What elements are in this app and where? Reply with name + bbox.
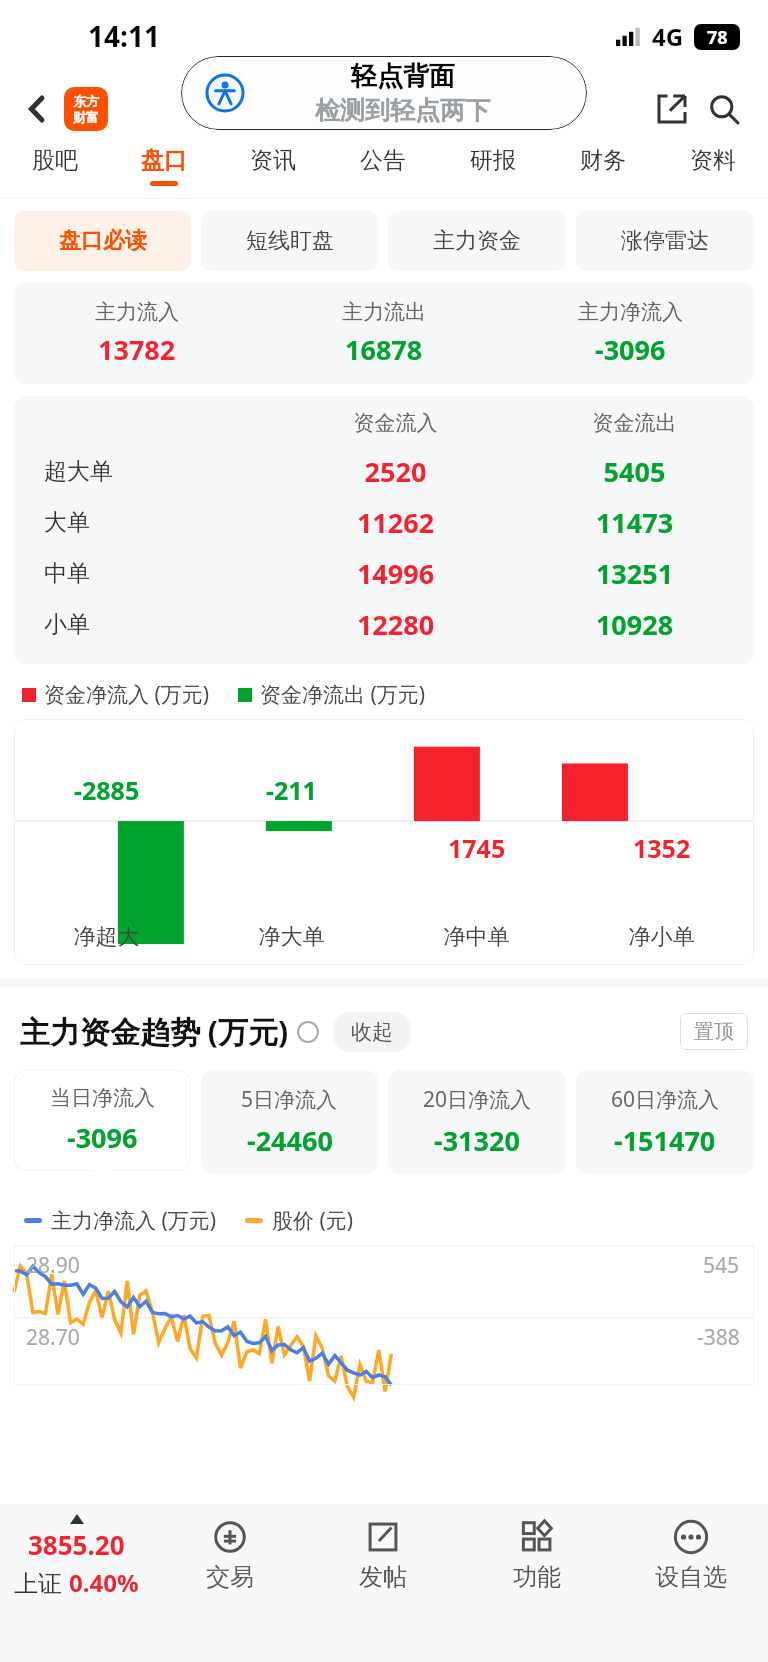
staticText: -388 [697, 1323, 740, 1352]
staticText: 东方 [73, 93, 99, 109]
staticText: 资金流出 [515, 410, 754, 436]
staticText: 545 [703, 1251, 740, 1280]
staticText: -211 [266, 773, 317, 807]
staticText: 资金净流入 (万元) [44, 680, 210, 709]
button[interactable]: 盘口 [109, 146, 218, 198]
staticText: 检测到轻点两下 [315, 95, 490, 126]
button[interactable]: 主力资金 [388, 211, 566, 271]
staticText: 净大单 [199, 923, 384, 951]
staticText: 2520 [276, 453, 515, 490]
button[interactable]: 5日净流入 [201, 1070, 378, 1174]
staticText: 主力流出 [342, 299, 426, 325]
button[interactable]: 置顶 [680, 1013, 748, 1050]
button[interactable]: Help [297, 1021, 319, 1043]
staticText: 资金净流出 (万元) [260, 680, 426, 709]
button[interactable]: Post [306, 1520, 460, 1592]
staticText: 16878 [345, 331, 423, 368]
staticText: 14996 [276, 555, 515, 592]
button[interactable]: 当日净流入 [14, 1070, 191, 1171]
staticText: 当日净流入 [50, 1085, 155, 1111]
staticText: 净中单 [384, 923, 569, 951]
button[interactable]: 收起 [333, 1012, 411, 1052]
staticText: 超大单 [44, 457, 276, 486]
staticText: 13782 [98, 331, 176, 368]
staticText: 上证 [14, 1566, 69, 1599]
staticText: 10928 [515, 606, 754, 643]
button[interactable]: Back [16, 87, 60, 131]
staticText: 涨停雷达 [621, 227, 709, 255]
staticText: 盘口必读 [59, 227, 147, 255]
button[interactable]: 公告 [328, 146, 438, 198]
staticText: 13251 [515, 555, 754, 592]
staticText: 1745 [448, 831, 506, 865]
staticText: 研报 [470, 146, 516, 175]
staticText: 28.90 [26, 1251, 80, 1280]
staticText: 28.70 [26, 1323, 80, 1352]
button[interactable]: 东方财富 [64, 87, 108, 131]
button[interactable]: 60日净流入 [576, 1070, 754, 1174]
staticText: 5405 [515, 453, 754, 490]
staticText: 发帖 [359, 1562, 407, 1592]
staticText: 小单 [44, 610, 276, 639]
button[interactable]: 研报 [438, 146, 548, 198]
staticText: 短线盯盘 [246, 227, 334, 255]
staticText: -24460 [247, 1122, 333, 1159]
staticText: 收起 [351, 1019, 393, 1045]
staticText: 盘口 [141, 146, 187, 175]
button[interactable]: Functions [460, 1520, 614, 1592]
staticText: 12280 [276, 606, 515, 643]
button[interactable]: 短线盯盘 [201, 211, 378, 271]
staticText: 5日净流入 [241, 1085, 338, 1114]
staticText: 轻点背面 [351, 60, 455, 93]
button[interactable]: 涨停雷达 [576, 211, 754, 271]
staticText: -3096 [67, 1119, 138, 1156]
staticText: 资讯 [250, 146, 296, 175]
staticText: 主力净流入 [578, 299, 683, 325]
staticText: 交易 [206, 1562, 254, 1592]
staticText: 主力流入 [95, 299, 179, 325]
button[interactable]: 资讯 [218, 146, 328, 198]
staticText: 功能 [513, 1562, 561, 1592]
button[interactable]: Watchlist [614, 1520, 768, 1592]
staticText: 14:11 [88, 17, 160, 55]
staticText: 设自选 [655, 1562, 727, 1592]
button[interactable]: 资料 [658, 146, 768, 198]
button[interactable]: 股吧 [0, 146, 109, 198]
staticText: 资料 [690, 146, 736, 175]
staticText: 11262 [276, 504, 515, 541]
button[interactable]: 财务 [548, 146, 658, 198]
staticText: 4G [652, 20, 684, 53]
button[interactable]: 20日净流入 [388, 1070, 566, 1174]
staticText: 净超大 [14, 923, 199, 951]
staticText: -151470 [614, 1122, 716, 1159]
staticText: 11473 [515, 504, 754, 541]
staticText: 净小单 [569, 923, 754, 951]
staticText: 3855.20 [28, 1527, 125, 1562]
staticText: 公告 [360, 146, 406, 175]
staticText: 78 [707, 25, 728, 50]
button[interactable]: Trade [153, 1520, 306, 1592]
staticText: 财富 [73, 109, 99, 125]
staticText: 股吧 [32, 146, 78, 175]
staticText: -2885 [74, 773, 140, 807]
button[interactable]: 盘口必读 [14, 211, 191, 271]
staticText: -3096 [595, 331, 666, 368]
button[interactable]: 3855.20 [0, 1514, 153, 1599]
staticText: 大单 [44, 508, 276, 537]
staticText: 置顶 [694, 1019, 734, 1044]
staticText: 0.40% [69, 1566, 139, 1599]
staticText: 主力资金趋势 (万元) [20, 1011, 289, 1052]
staticText: 中单 [44, 559, 276, 588]
staticText: 1352 [633, 831, 691, 865]
staticText: -31320 [434, 1122, 520, 1159]
staticText: 股价 (元) [272, 1206, 354, 1235]
button[interactable]: Share [646, 83, 698, 135]
staticText: 60日净流入 [611, 1085, 720, 1114]
staticText: 20日净流入 [423, 1085, 532, 1114]
staticText: 主力净流入 (万元) [51, 1206, 217, 1235]
button[interactable]: Search [698, 83, 750, 135]
staticText: 财务 [580, 146, 626, 175]
staticText: 资金流入 [276, 410, 515, 436]
staticText: 主力资金 [433, 227, 521, 255]
